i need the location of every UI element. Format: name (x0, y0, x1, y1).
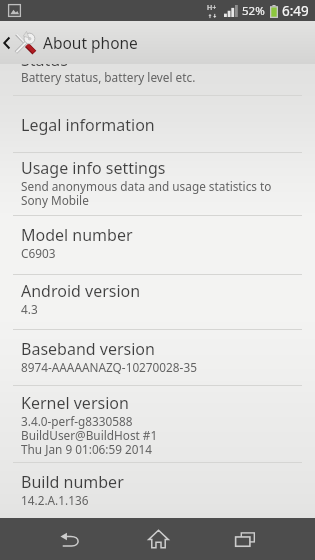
staticText: Build number (21, 471, 124, 493)
button[interactable]: Status (0, 64, 315, 95)
staticText: 14.2.A.1.136 (21, 492, 89, 508)
button[interactable]: Back (26, 518, 114, 560)
button[interactable]: Recent apps (201, 518, 289, 560)
button[interactable]: Navigate up (0, 21, 315, 64)
staticText: Send anonymous data and usage statistics… (21, 178, 272, 208)
staticText: H+ (207, 3, 217, 13)
staticText: 3.4.0-perf-g8330588 BuildUser@BuildHost … (21, 413, 158, 457)
button[interactable]: Build number (0, 463, 315, 518)
button[interactable]: Android version (0, 275, 315, 329)
staticText: Battery status, battery level etc. (21, 69, 196, 85)
staticText: Kernel version (21, 392, 129, 414)
staticText: About phone (43, 32, 138, 53)
staticText: 4.3 (21, 301, 38, 317)
staticText: Usage info settings (21, 157, 166, 179)
staticText: Status (21, 64, 68, 71)
button[interactable]: Kernel version (0, 386, 315, 462)
button[interactable]: Legal information (0, 96, 315, 152)
other: Navigate up (3, 37, 10, 49)
button[interactable]: Home (114, 518, 202, 560)
button[interactable]: Usage info settings (0, 153, 315, 215)
staticText: Baseband version (21, 338, 155, 360)
staticText: Model number (21, 224, 133, 246)
staticText: 8974-AAAAANAZQ-10270028-35 (21, 359, 197, 375)
button[interactable]: Baseband version (0, 330, 315, 385)
staticText: 52% (242, 3, 265, 19)
staticText: Android version (21, 280, 141, 302)
button[interactable]: Model number (0, 216, 315, 274)
staticText: Legal information (21, 114, 155, 136)
staticText: C6903 (21, 245, 56, 261)
staticText: 6:49 (282, 2, 309, 20)
